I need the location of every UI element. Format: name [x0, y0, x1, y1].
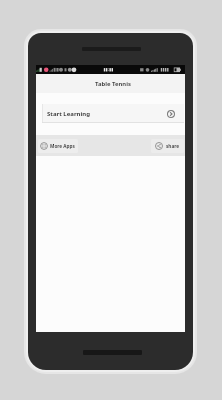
- staticText: Table Tennis: [95, 80, 131, 88]
- button[interactable]: More Apps: [38, 139, 78, 153]
- staticText: Start Learning: [47, 110, 90, 118]
- button[interactable]: share: [151, 139, 184, 153]
- other: Open Start Learning: [167, 110, 175, 118]
- staticText: share: [166, 143, 180, 149]
- staticText: More Apps: [50, 143, 75, 149]
- button[interactable]: Start Learning: [42, 104, 184, 123]
